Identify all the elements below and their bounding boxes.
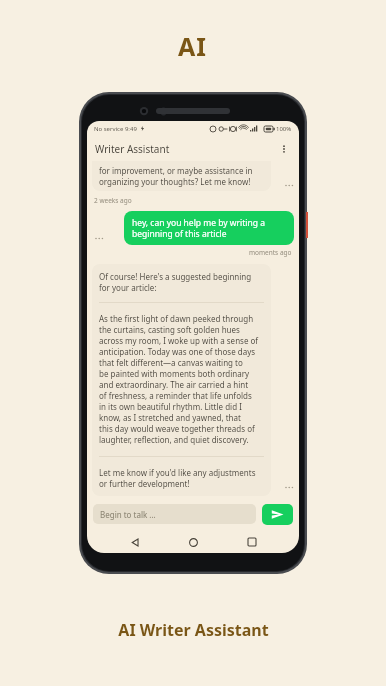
button[interactable]: Of course! Here's a suggested beginning … [92, 264, 271, 496]
staticText: Let me know if you'd like any adjustment… [99, 467, 256, 489]
staticText: moments ago [249, 248, 292, 257]
staticText: 2 weeks ago [94, 196, 132, 205]
button[interactable]: Back [124, 531, 146, 553]
staticText: hey, can you help me by writing a beginn… [132, 217, 265, 239]
staticText: AI [178, 29, 208, 63]
button[interactable]: for improvement, or maybe assistance in … [92, 161, 271, 191]
button[interactable]: Home [182, 531, 204, 553]
button[interactable]: More options [275, 140, 293, 158]
button[interactable]: Recent apps [241, 531, 263, 553]
button[interactable]: Begin to talk ... [93, 504, 256, 524]
staticText: No service 9:49 [94, 125, 137, 133]
button[interactable]: hey, can you help me by writing a beginn… [124, 211, 294, 245]
staticText: Begin to talk ... [100, 509, 156, 520]
staticText: Of course! Here's a suggested beginning … [99, 271, 252, 293]
staticText: Writer Assistant [95, 142, 170, 156]
staticText: 100% [276, 125, 292, 133]
button[interactable]: Send [262, 504, 293, 525]
staticText: for improvement, or maybe assistance in … [99, 165, 253, 187]
staticText: AI Writer Assistant [118, 619, 269, 641]
staticText: As the first light of dawn peeked throug… [99, 313, 259, 445]
